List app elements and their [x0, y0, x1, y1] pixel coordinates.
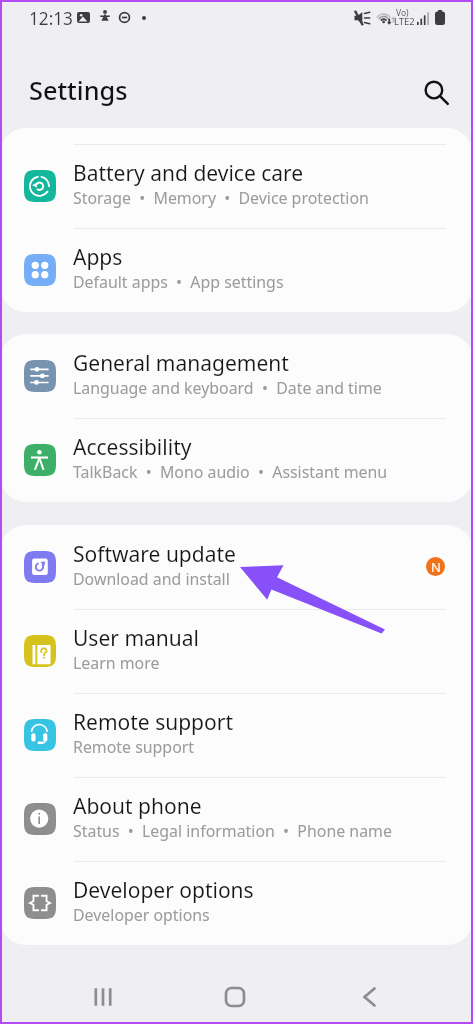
staticText: N [431, 558, 441, 576]
button[interactable]: Developer options [0, 861, 473, 945]
staticText: Language and keyboard • Date and time [73, 377, 382, 399]
staticText: LTE2 [394, 15, 415, 28]
staticText: Developer options [73, 876, 254, 905]
staticText: Developer options [73, 904, 210, 926]
staticText: Accessibility [73, 433, 192, 462]
button[interactable]: Home [195, 965, 275, 1024]
staticText: User manual [73, 624, 199, 653]
staticText: Status • Legal information • Phone name [73, 820, 392, 842]
staticText: Battery and device care [73, 159, 304, 188]
staticText: Remote support [73, 736, 195, 758]
staticText: Download and install [73, 568, 230, 590]
staticText: 12:13 [29, 7, 73, 30]
staticText: General management [73, 349, 289, 378]
staticText: Apps [73, 243, 123, 272]
button[interactable]: Remote support [0, 693, 473, 777]
staticText: Default apps • App settings [73, 271, 284, 293]
staticText: Settings [29, 73, 128, 107]
staticText: Remote support [73, 708, 233, 737]
button[interactable]: Back [328, 965, 408, 1024]
staticText: Vo) [396, 7, 409, 19]
button[interactable]: General management [0, 334, 473, 418]
button[interactable]: About phone [0, 777, 473, 861]
button[interactable]: Apps [0, 228, 473, 312]
button[interactable]: User manual [0, 609, 473, 693]
button[interactable]: Battery and device care [0, 144, 473, 228]
button[interactable]: Accessibility [0, 418, 473, 502]
button[interactable]: Search [415, 72, 459, 116]
staticText: Learn more [73, 652, 160, 674]
button[interactable]: Software update [0, 525, 473, 609]
staticText: About phone [73, 792, 202, 821]
button[interactable]: Recents [63, 965, 143, 1024]
staticText: Storage • Memory • Device protection [73, 187, 369, 209]
staticText: Software update [73, 540, 236, 569]
staticText: TalkBack • Mono audio • Assistant menu [73, 461, 388, 483]
